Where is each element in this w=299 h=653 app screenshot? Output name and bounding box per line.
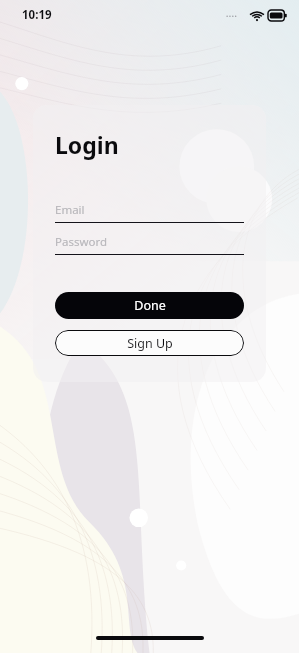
button[interactable]: Email [55,202,244,223]
button[interactable]: Password [55,234,244,255]
staticText: Sign Up [127,335,173,352]
staticText: Email [55,202,85,218]
staticText: Done [134,297,166,314]
staticText: Password [55,234,108,250]
button[interactable]: Done [55,292,244,319]
staticText: Login [55,129,119,160]
button[interactable]: Sign Up [55,330,244,356]
staticText: 10:19 [22,7,52,23]
